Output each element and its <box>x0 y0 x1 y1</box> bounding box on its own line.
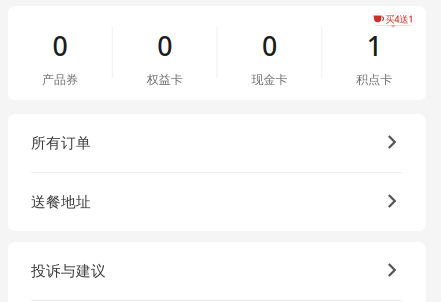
staticText: 权益卡 <box>147 72 183 87</box>
button[interactable]: 送餐地址 <box>8 173 426 231</box>
button[interactable]: 0 <box>8 6 112 100</box>
staticText: 所有订单 <box>31 134 91 152</box>
button[interactable]: 0 <box>217 6 321 100</box>
staticText: 现金卡 <box>251 72 287 87</box>
staticText: 投诉与建议 <box>31 262 106 280</box>
button[interactable]: 1 <box>322 6 426 100</box>
staticText: 买4送1 <box>385 13 413 25</box>
staticText: 产品券 <box>42 72 78 87</box>
staticText: 1 <box>367 28 382 63</box>
staticText: 送餐地址 <box>31 193 91 211</box>
button[interactable]: 投诉与建议 <box>8 242 426 300</box>
staticText: 0 <box>262 28 277 63</box>
staticText: 0 <box>157 28 172 63</box>
staticText: 0 <box>52 28 67 63</box>
button[interactable]: 所有订单 <box>8 114 426 172</box>
staticText: 积点卡 <box>356 72 392 87</box>
button[interactable]: 0 <box>113 6 217 100</box>
